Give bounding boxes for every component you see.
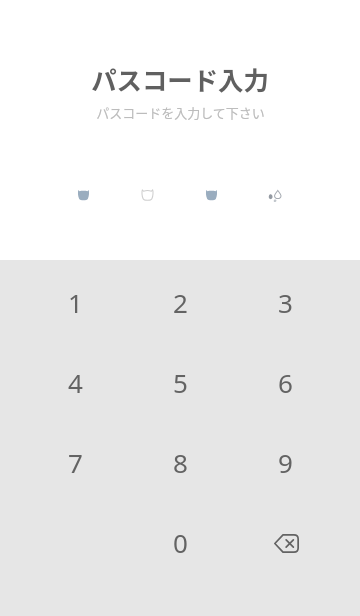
button[interactable]: 5 [128,342,233,422]
staticText: 1 [68,285,83,320]
button[interactable]: 8 [128,422,233,502]
button[interactable]: 7 [23,422,128,502]
staticText: 0 [173,525,188,560]
staticText: 6 [278,365,293,400]
button[interactable]: 0 [128,502,233,582]
staticText: 2 [173,285,188,320]
staticText: 4 [68,365,83,400]
button[interactable]: 6 [233,342,338,422]
staticText: 5 [173,365,188,400]
button[interactable]: 2 [128,262,233,342]
button[interactable]: 9 [233,422,338,502]
button[interactable]: 3 [233,262,338,342]
button[interactable]: 4 [23,342,128,422]
staticText: パスコード入力 [91,61,269,98]
button[interactable]: 1 [23,262,128,342]
staticText: パスコードを入力して下さい [96,103,265,122]
staticText: 9 [278,445,293,480]
button[interactable]: Backspace [233,502,338,582]
staticText: 3 [278,285,293,320]
staticText: 8 [173,445,188,480]
staticText: 7 [68,445,83,480]
